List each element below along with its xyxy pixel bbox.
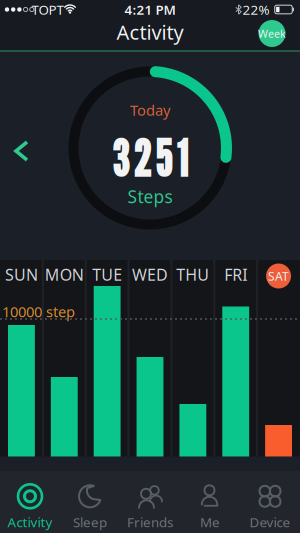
staticText: Activity bbox=[116, 19, 183, 45]
staticText: TUE bbox=[92, 264, 122, 285]
staticText: 2 bbox=[133, 129, 151, 188]
button[interactable]: Back bbox=[8, 134, 35, 168]
staticText: Today bbox=[130, 100, 170, 120]
button[interactable]: Sleep bbox=[60, 471, 120, 533]
staticText: 5 bbox=[155, 129, 172, 188]
staticText: 3 bbox=[112, 129, 129, 188]
staticText: Activity bbox=[7, 513, 52, 531]
button[interactable]: Device bbox=[240, 471, 300, 533]
staticText: SUN bbox=[5, 264, 38, 285]
staticText: 10000 step bbox=[2, 302, 75, 321]
staticText: FRI bbox=[224, 264, 247, 285]
staticText: THU bbox=[176, 264, 209, 285]
staticText: MON bbox=[45, 264, 84, 285]
button[interactable]: Friends bbox=[120, 471, 180, 533]
staticText: 22% bbox=[242, 1, 269, 18]
staticText: Friends bbox=[127, 513, 173, 531]
staticText: Sleep bbox=[73, 513, 107, 531]
staticText: 1 bbox=[176, 129, 188, 188]
staticText: WED bbox=[132, 264, 168, 285]
button[interactable]: Activity bbox=[0, 471, 60, 533]
staticText: TOPT bbox=[31, 1, 63, 18]
button[interactable]: Me bbox=[180, 471, 240, 533]
button[interactable]: Week bbox=[258, 20, 286, 47]
staticText: Device bbox=[249, 513, 290, 531]
staticText: SAT bbox=[268, 268, 289, 284]
staticText: Me bbox=[200, 513, 220, 531]
staticText: Week bbox=[258, 26, 286, 41]
staticText: Steps bbox=[127, 185, 172, 208]
staticText: 4:21 PM bbox=[124, 1, 175, 18]
